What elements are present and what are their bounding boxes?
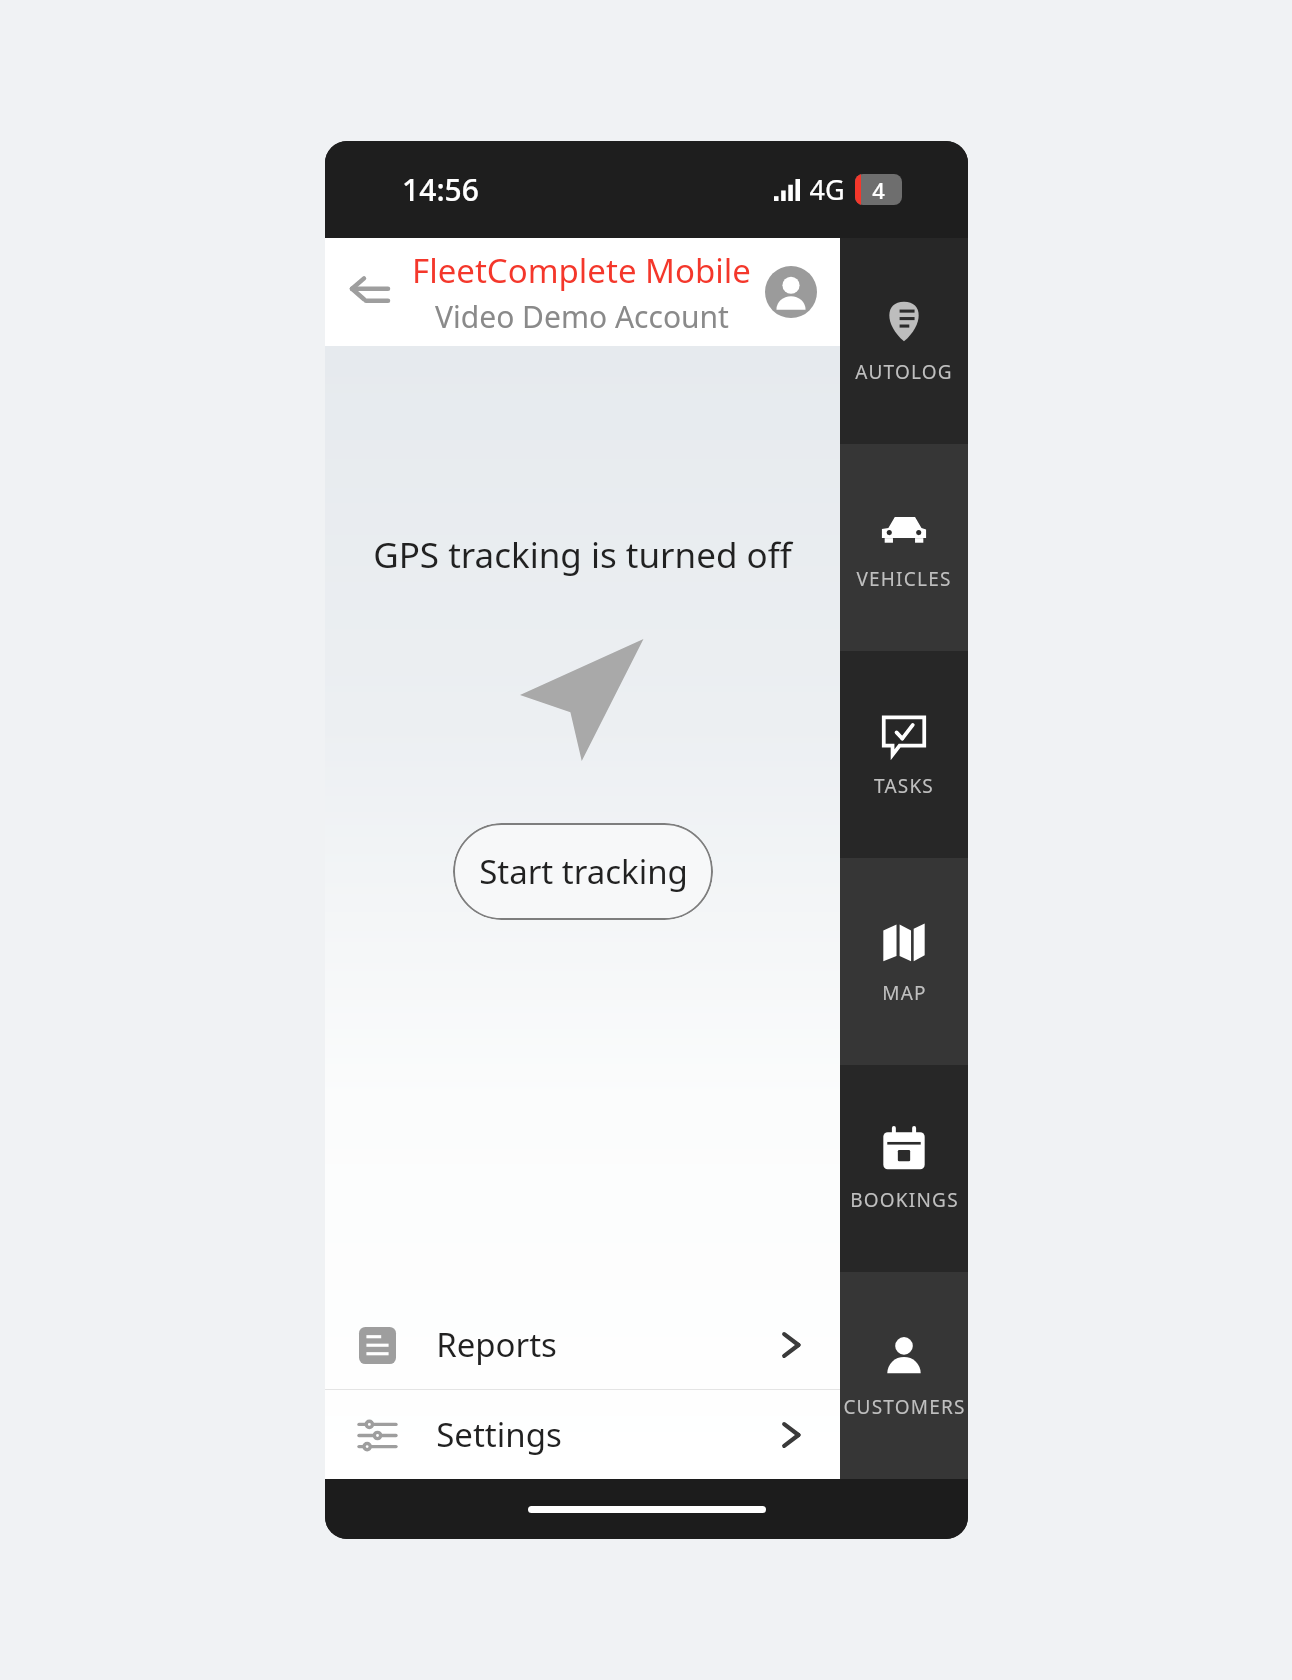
button[interactable]: MAP [840, 858, 968, 1065]
staticText: TASKS [874, 773, 934, 799]
staticText: BOOKINGS [850, 1187, 959, 1213]
staticText: GPS tracking is turned off [373, 531, 792, 579]
button[interactable]: Settings [325, 1390, 840, 1479]
staticText: Settings [436, 1412, 562, 1457]
button[interactable]: BOOKINGS [840, 1065, 968, 1272]
staticText: FleetComplete Mobile [412, 248, 751, 293]
staticText: Reports [436, 1322, 557, 1367]
staticText: 4G [809, 171, 845, 208]
staticText: AUTOLOG [855, 359, 953, 385]
staticText: CUSTOMERS [843, 1394, 966, 1420]
staticText: Start tracking [479, 849, 688, 894]
button[interactable]: AUTOLOG [840, 238, 968, 444]
button[interactable]: Account [760, 261, 822, 323]
button[interactable]: Back [337, 259, 403, 325]
staticText: 4 [872, 175, 885, 205]
staticText: 14:56 [402, 169, 479, 210]
staticText: Video Demo Account [435, 296, 729, 337]
button[interactable]: CUSTOMERS [840, 1272, 968, 1479]
button[interactable]: Start tracking [453, 823, 713, 920]
button[interactable]: Reports [325, 1300, 840, 1389]
button[interactable]: TASKS [840, 651, 968, 858]
staticText: VEHICLES [856, 566, 952, 592]
button[interactable]: VEHICLES [840, 444, 968, 651]
staticText: MAP [882, 980, 927, 1006]
